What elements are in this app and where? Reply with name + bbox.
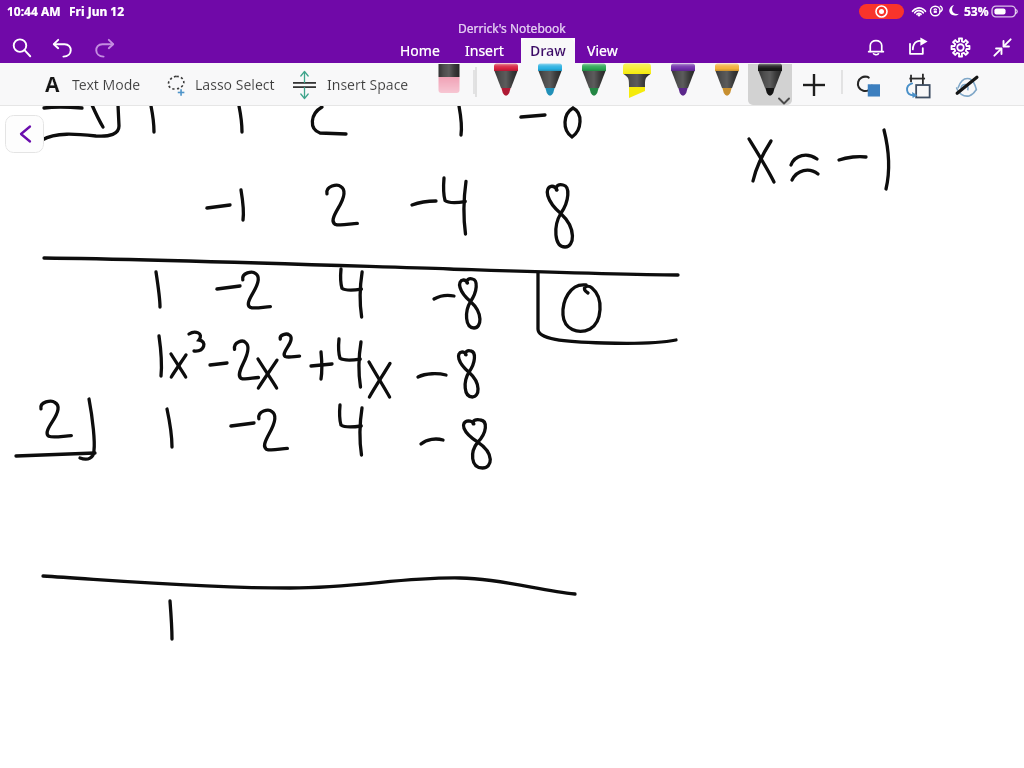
staticText: Lasso Select xyxy=(195,75,275,94)
button[interactable]: Insert Space xyxy=(293,63,409,106)
staticText: View xyxy=(587,41,618,60)
button[interactable]: Insert xyxy=(465,38,504,63)
button[interactable]: A xyxy=(45,63,141,106)
staticText: Insert Space xyxy=(327,75,409,94)
button[interactable]: Back xyxy=(5,115,44,153)
button[interactable]: Settings xyxy=(947,34,973,60)
button[interactable]: Notifications xyxy=(863,34,889,60)
button[interactable]: Collapse xyxy=(989,34,1015,60)
staticText: Draw xyxy=(530,41,566,60)
staticText: 10:44 AM xyxy=(7,3,61,19)
staticText: 53% xyxy=(964,3,989,19)
staticText: Derrick's Notebook xyxy=(458,20,566,36)
staticText: Text Mode xyxy=(72,75,141,94)
button[interactable]: Share xyxy=(905,34,931,60)
button[interactable]: Black pen xyxy=(748,64,792,105)
staticText: Insert xyxy=(465,41,504,60)
staticText: Home xyxy=(400,41,440,60)
button[interactable]: Ink to math xyxy=(952,71,980,99)
staticText: Fri Jun 12 xyxy=(69,3,125,19)
button[interactable]: Redo xyxy=(91,34,117,60)
button[interactable]: Draw xyxy=(521,38,575,63)
button[interactable]: Home xyxy=(400,38,440,63)
button[interactable]: Search xyxy=(8,34,34,60)
button[interactable]: Convert to shape xyxy=(903,70,931,98)
button[interactable]: Undo shape xyxy=(854,71,882,99)
button[interactable]: View xyxy=(587,38,618,63)
staticText: A xyxy=(45,70,60,99)
button[interactable]: Lasso Select xyxy=(165,63,275,106)
button[interactable]: Undo xyxy=(50,34,76,60)
button[interactable]: Add pen xyxy=(800,71,828,99)
